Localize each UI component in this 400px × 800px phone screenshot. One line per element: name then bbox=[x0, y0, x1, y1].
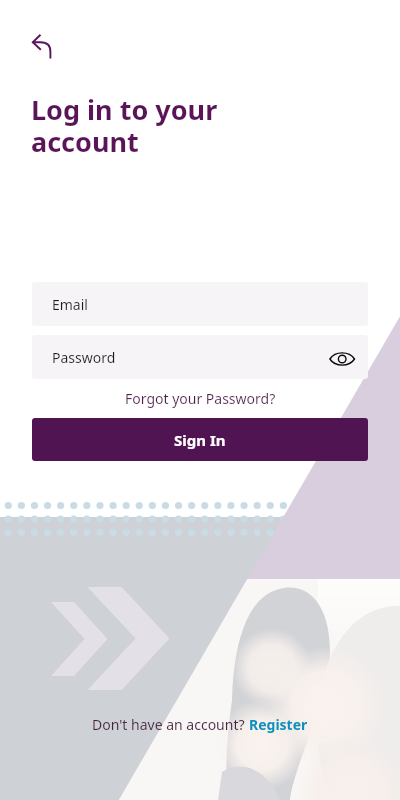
staticText: Sign In bbox=[174, 430, 226, 450]
button[interactable]: Sign In bbox=[32, 418, 368, 461]
button[interactable]: Back bbox=[22, 28, 62, 68]
staticText: Don't have an account? bbox=[92, 715, 249, 734]
button[interactable]: Register bbox=[249, 715, 308, 734]
button[interactable]: Show password bbox=[326, 342, 358, 374]
staticText: Email bbox=[52, 295, 88, 314]
staticText: Password bbox=[52, 348, 116, 367]
staticText: Log in to your account bbox=[31, 91, 218, 160]
button[interactable]: Password bbox=[32, 335, 368, 379]
button[interactable]: Email bbox=[32, 282, 368, 326]
button[interactable]: Forgot your Password? bbox=[119, 387, 282, 410]
